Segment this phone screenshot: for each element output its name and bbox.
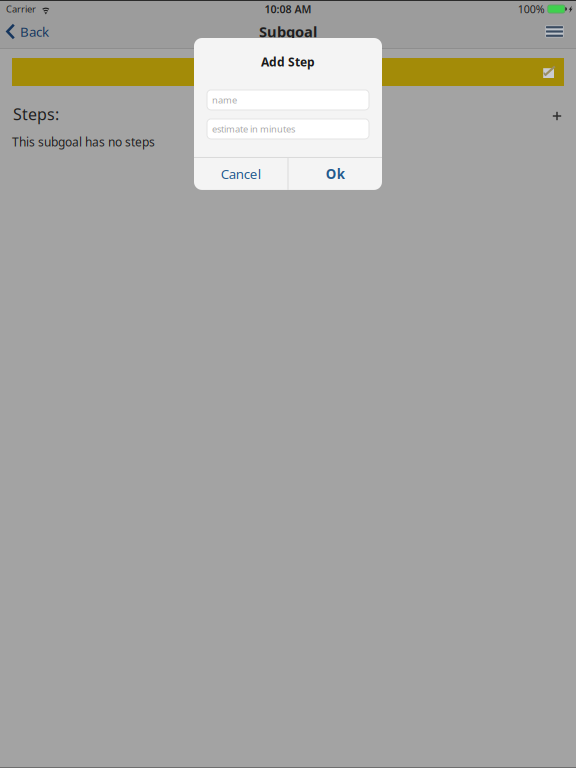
staticText: Add Step bbox=[261, 54, 315, 70]
button[interactable]: Menu bbox=[539, 17, 570, 45]
staticText: Carrier bbox=[6, 3, 36, 15]
staticText: Cancel bbox=[221, 165, 261, 183]
button[interactable]: Add step bbox=[541, 101, 573, 127]
staticText: 100% bbox=[518, 2, 545, 16]
staticText: Steps: bbox=[13, 103, 59, 125]
staticText: Ok bbox=[326, 165, 345, 183]
button[interactable]: Back bbox=[0, 17, 57, 45]
staticText: Subgoal bbox=[259, 22, 317, 41]
staticText: estimate in minutes bbox=[212, 123, 295, 135]
button[interactable]: Cancel bbox=[194, 158, 287, 190]
staticText: This subgoal has no steps bbox=[12, 134, 155, 150]
button[interactable]: Ok bbox=[288, 158, 382, 190]
staticText: 10:08 AM bbox=[264, 2, 311, 16]
staticText: name bbox=[212, 94, 237, 106]
staticText: Back bbox=[20, 23, 49, 40]
